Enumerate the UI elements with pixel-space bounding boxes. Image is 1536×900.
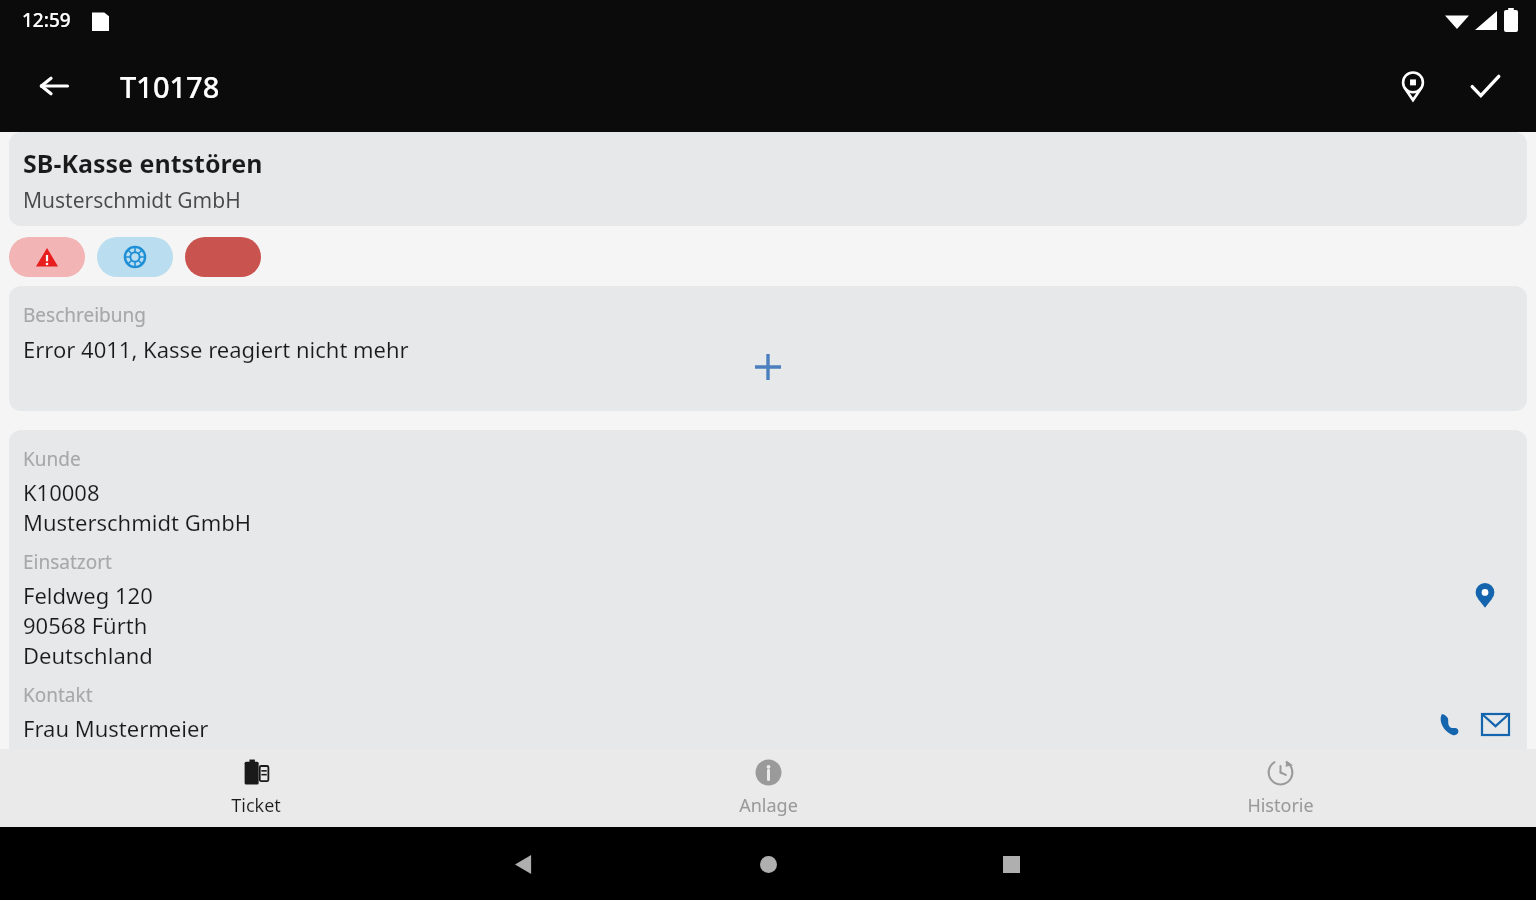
button[interactable]: Hinzufügen [742, 341, 794, 393]
button[interactable]: Anlage [512, 749, 1024, 827]
staticText: Musterschmidt GmbH [23, 507, 252, 537]
staticText: SB-Kasse entstören [23, 146, 263, 180]
button[interactable]: Ticket [0, 749, 512, 827]
staticText: 12:59 [22, 7, 71, 33]
button[interactable]: Karte öffnen [1463, 573, 1507, 617]
staticText: Frau Mustermeier [23, 713, 209, 743]
staticText: T10178 [120, 67, 220, 106]
staticText: Musterschmidt GmbH [23, 186, 241, 215]
button[interactable]: Anlage [97, 237, 173, 277]
staticText: Historie [1247, 793, 1314, 818]
button[interactable]: Anrufen [1427, 702, 1471, 746]
staticText: K10008 [23, 477, 100, 507]
button[interactable]: Back [26, 58, 82, 114]
staticText: Ticket [231, 793, 281, 818]
button[interactable]: Status [185, 237, 261, 277]
button[interactable]: Location [1384, 57, 1442, 115]
staticText: Kontakt [23, 682, 93, 708]
staticText: Anlage [739, 793, 798, 818]
button[interactable]: E-Mail senden [1473, 702, 1517, 746]
button[interactable]: Beschreibung [9, 286, 1527, 411]
button[interactable]: Home [740, 836, 796, 892]
button[interactable]: Historie [1024, 749, 1536, 827]
button[interactable]: Back [496, 836, 552, 892]
staticText: Error 4011, Kasse reagiert nicht mehr [23, 334, 409, 364]
button[interactable]: SB-Kasse entstören [9, 132, 1527, 226]
button[interactable]: Priorität hoch [9, 237, 85, 277]
staticText: Kunde [23, 446, 81, 472]
staticText: Feldweg 120 [23, 580, 153, 610]
staticText: Deutschland [23, 640, 153, 670]
staticText: Einsatzort [23, 549, 112, 575]
staticText: Beschreibung [23, 302, 146, 328]
button[interactable]: Recent apps [983, 836, 1039, 892]
button[interactable]: Confirm [1456, 57, 1514, 115]
staticText: 90568 Fürth [23, 610, 148, 640]
